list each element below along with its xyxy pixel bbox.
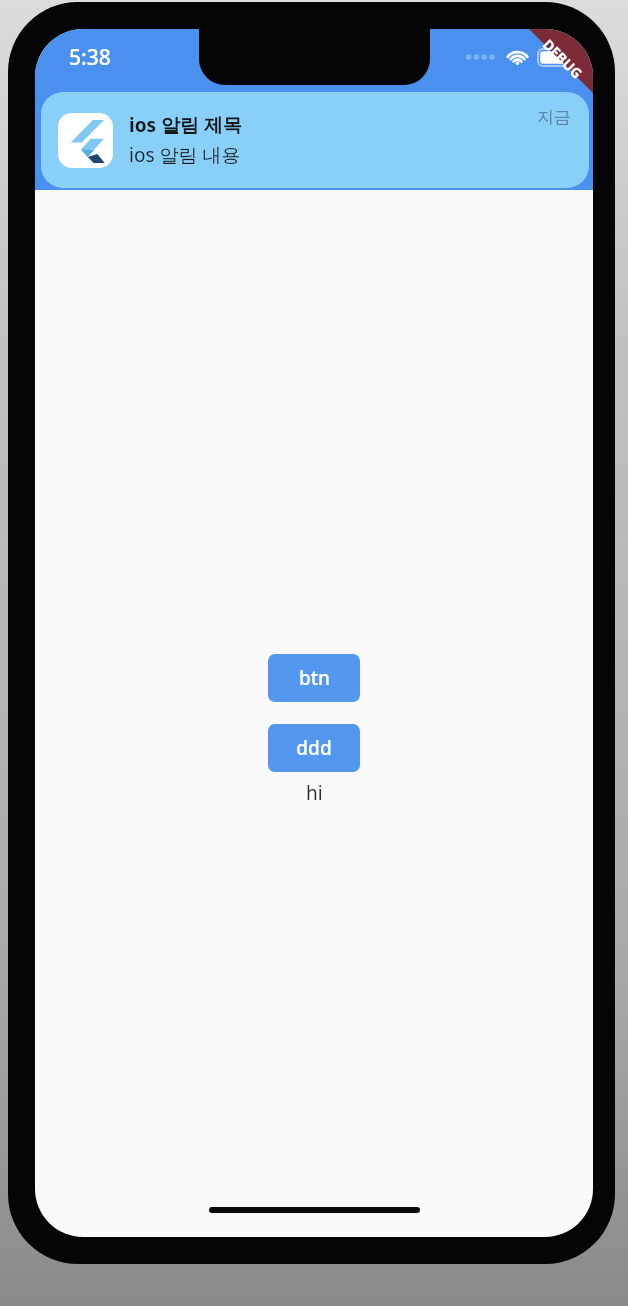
staticText: ios 알림 내용 (129, 142, 241, 168)
staticText: 지금 (537, 107, 571, 128)
staticText: btn (299, 665, 330, 691)
button[interactable]: ios 알림 제목 (41, 92, 589, 188)
other: Debug banner (493, 29, 593, 129)
staticText: 5:38 (69, 43, 111, 72)
button[interactable]: btn (268, 654, 360, 702)
staticText: ddd (296, 735, 332, 761)
staticText: hi (306, 780, 323, 806)
staticText: ios 알림 제목 (129, 112, 242, 138)
button[interactable]: ddd (268, 724, 360, 772)
